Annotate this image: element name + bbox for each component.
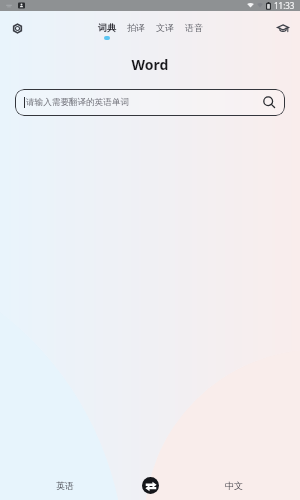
button[interactable]: 英语 <box>45 473 85 497</box>
button[interactable]: 请输入需要翻译的英语单词 <box>15 89 285 116</box>
button[interactable]: 语音 <box>179 22 208 40</box>
button[interactable]: Settings <box>7 18 28 39</box>
button[interactable]: 拍译 <box>121 22 150 40</box>
staticText: 语音 <box>185 22 203 33</box>
button[interactable]: Learning <box>272 18 293 39</box>
staticText: 11:33 <box>274 0 295 11</box>
staticText: 词典 <box>98 22 116 33</box>
button[interactable]: 词典 <box>92 22 121 40</box>
staticText: 英语 <box>56 480 74 491</box>
button[interactable]: 中文 <box>214 473 254 497</box>
staticText: 拍译 <box>127 22 145 33</box>
button[interactable]: Swap languages <box>142 477 159 494</box>
button[interactable]: 文译 <box>150 22 179 40</box>
staticText: Word <box>0 55 300 74</box>
staticText: 文译 <box>156 22 174 33</box>
staticText: 请输入需要翻译的英语单词 <box>26 97 130 108</box>
staticText: 中文 <box>225 480 243 491</box>
